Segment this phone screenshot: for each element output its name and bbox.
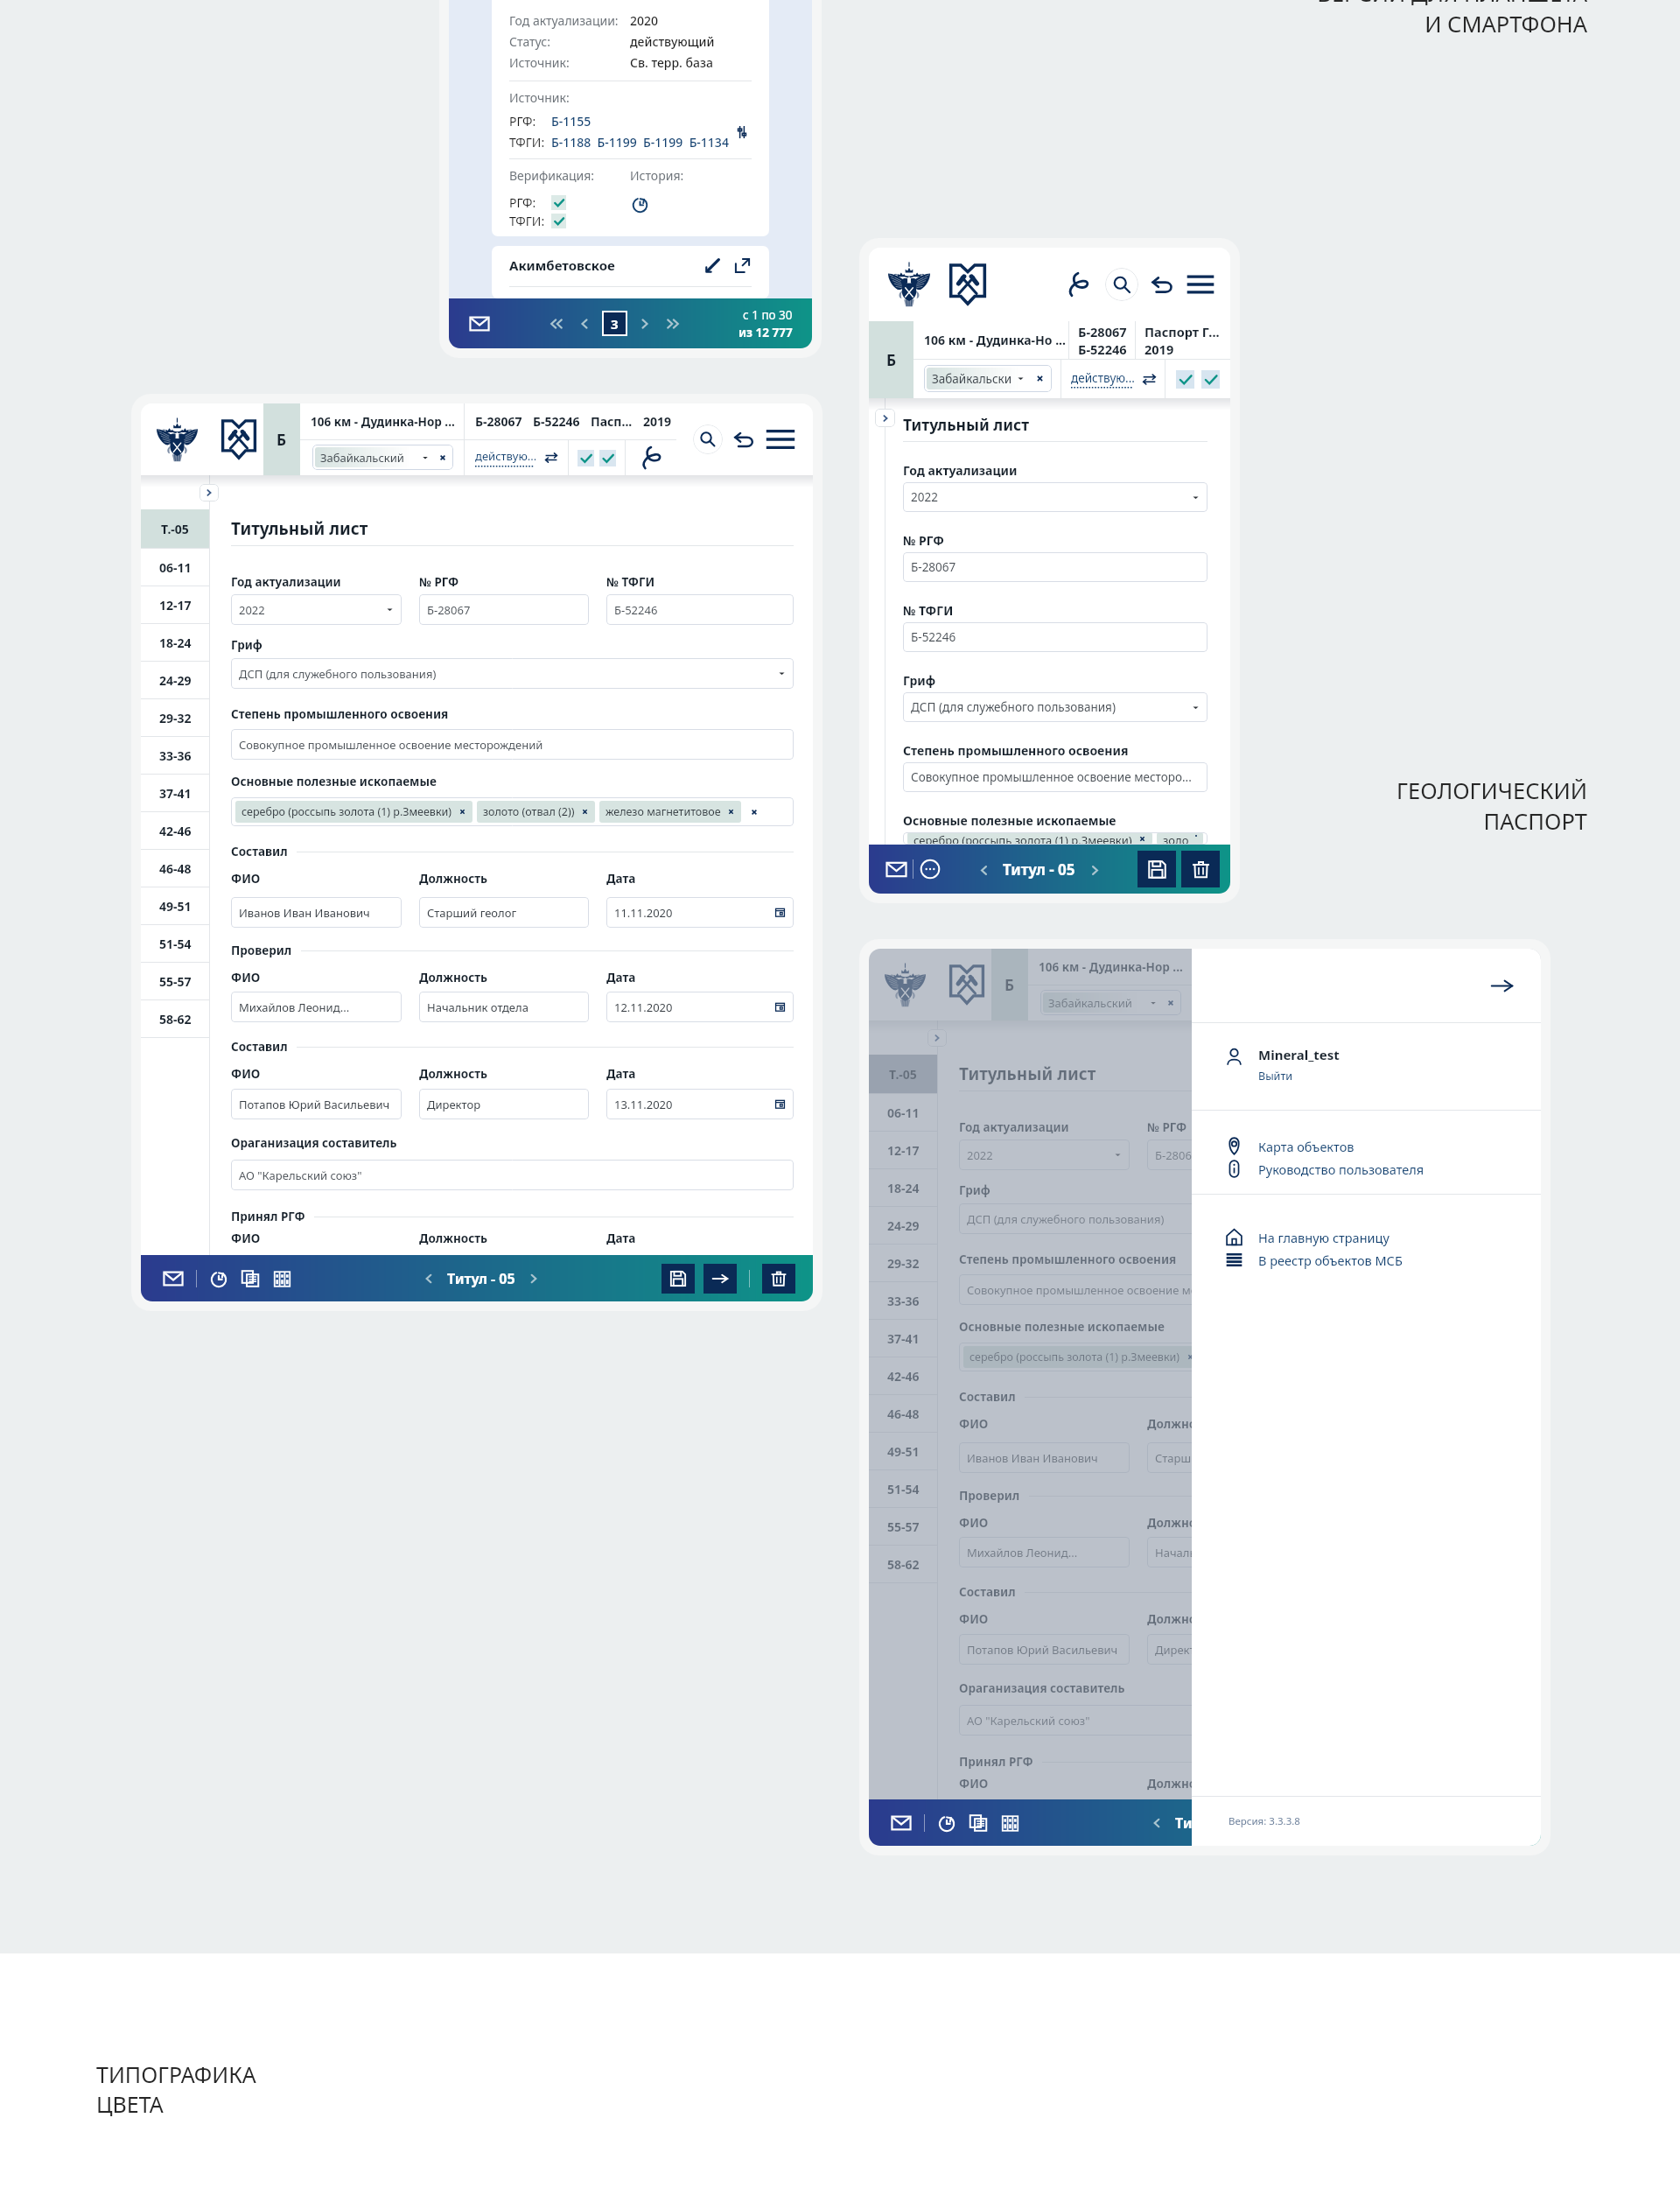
button[interactable]: Filter — [732, 123, 752, 142]
button[interactable]: Б-52246 — [903, 622, 1207, 652]
button[interactable]: 42-46 — [141, 812, 209, 849]
button[interactable]: 55-57 — [141, 963, 209, 999]
button[interactable]: Previous page — [574, 313, 595, 334]
button[interactable]: Edit — [703, 256, 722, 275]
button[interactable]: Руководство пользователя — [1192, 1160, 1541, 1178]
button[interactable]: Старший геолог — [419, 897, 589, 928]
button[interactable]: Mail — [468, 312, 491, 335]
button[interactable]: 3 — [602, 311, 627, 336]
button[interactable]: Забайкальский — [1040, 990, 1181, 1015]
button[interactable]: Copy — [240, 1268, 261, 1289]
button[interactable]: 06-11 — [141, 549, 209, 586]
button[interactable]: 12.11.2020 — [606, 992, 794, 1022]
button[interactable]: 37-41 — [141, 775, 209, 811]
button[interactable]: 18-24 — [869, 1169, 937, 1206]
button[interactable]: Mineral_test — [1192, 1046, 1541, 1083]
button[interactable]: 06-11 — [869, 1094, 937, 1131]
button[interactable]: 33-36 — [141, 737, 209, 774]
button[interactable]: Previous — [974, 860, 993, 880]
button[interactable]: Table — [999, 1813, 1020, 1834]
button[interactable]: 46-48 — [869, 1395, 937, 1432]
button[interactable]: 18-24 — [141, 624, 209, 661]
button[interactable]: Delete — [1181, 851, 1220, 887]
button[interactable]: Next page — [634, 313, 655, 334]
button[interactable]: Open — [732, 256, 752, 275]
button[interactable]: History — [630, 194, 650, 214]
button[interactable]: 2022 — [959, 1140, 1130, 1170]
button[interactable]: 51-54 — [869, 1470, 937, 1507]
button[interactable]: Начальник отдела — [1147, 1537, 1317, 1567]
button[interactable]: 11.11.2020 — [606, 897, 794, 928]
button[interactable]: ДСП (для служебного пользования) — [959, 1203, 1522, 1234]
button[interactable]: 58-62 — [141, 1000, 209, 1037]
button[interactable]: Verified TFGI — [1201, 370, 1220, 389]
button[interactable]: 37-41 — [869, 1320, 937, 1357]
button[interactable]: Т.-05 — [141, 509, 209, 548]
button[interactable]: 42-46 — [869, 1357, 937, 1394]
button[interactable]: 12-17 — [141, 586, 209, 623]
button[interactable]: Close menu — [1487, 971, 1516, 1000]
button[interactable]: Copy — [968, 1813, 989, 1834]
button[interactable]: Потапов Юрий Васильевич — [959, 1634, 1130, 1665]
button[interactable]: Потапов Юрий Васильевич — [231, 1089, 402, 1119]
button[interactable]: Иванов Иван Иванович — [231, 897, 402, 928]
button[interactable]: Forward — [703, 1264, 737, 1294]
button[interactable]: Директор — [419, 1089, 589, 1119]
button[interactable]: Mail — [162, 1267, 185, 1290]
button[interactable]: 49-51 — [141, 887, 209, 924]
button[interactable]: Б-52246 — [1334, 1140, 1522, 1170]
button[interactable]: Mail — [885, 858, 907, 880]
button[interactable]: Б — [991, 949, 1028, 1020]
button[interactable]: В реестр объектов МСБ — [1192, 1251, 1541, 1269]
button[interactable]: Забайкальский — [924, 365, 1052, 392]
button[interactable]: 12-17 — [869, 1132, 937, 1168]
button[interactable]: Б — [263, 403, 300, 475]
button[interactable]: Menu — [1186, 270, 1215, 299]
button[interactable]: Б-28067 — [1147, 1140, 1317, 1170]
button[interactable]: 55-57 — [869, 1508, 937, 1545]
button[interactable]: 2022 — [903, 482, 1207, 512]
button[interactable]: Search — [693, 424, 723, 454]
button[interactable]: Expand panel — [927, 1029, 947, 1047]
button[interactable]: History — [936, 1813, 957, 1834]
button[interactable]: Михайлов Леонид... — [959, 1537, 1130, 1567]
button[interactable]: Verified RGF — [577, 450, 594, 466]
button[interactable]: серебро (россыпь золота (1) р.Змеевки) — [903, 832, 1207, 845]
button[interactable]: Search — [1105, 268, 1138, 301]
button[interactable]: Совокупное промышленное освоение месторо… — [231, 729, 794, 760]
button[interactable]: Иванов Иван Иванович — [959, 1442, 1130, 1473]
button[interactable]: АО "Карельский союз" — [959, 1705, 1522, 1736]
button[interactable]: 2022 — [231, 594, 402, 625]
button[interactable]: Sign document — [626, 440, 676, 475]
button[interactable]: 29-32 — [141, 699, 209, 736]
button[interactable]: Previous — [419, 1269, 438, 1288]
button[interactable]: ДСП (для служебного пользования) — [231, 658, 794, 689]
button[interactable]: Save — [1137, 851, 1176, 887]
button[interactable]: Next — [524, 1269, 543, 1288]
button[interactable]: Menu — [765, 424, 796, 455]
button[interactable]: Undo — [1149, 271, 1175, 298]
button[interactable]: Совокупное промышленное освоение месторо… — [903, 762, 1207, 792]
button[interactable]: Б-52246 — [606, 594, 794, 625]
button[interactable]: 58-62 — [869, 1546, 937, 1582]
button[interactable]: Delete — [762, 1264, 795, 1294]
button[interactable]: Expand panel — [199, 484, 219, 501]
button[interactable]: серебро (россыпь золота (1) р.Змеевки) — [959, 1343, 1522, 1371]
button[interactable]: На главную страницу — [1192, 1228, 1541, 1246]
button[interactable]: 29-32 — [869, 1245, 937, 1281]
button[interactable]: Menu — [1493, 969, 1524, 1000]
button[interactable]: Mail — [890, 1812, 913, 1834]
button[interactable]: Save — [661, 1264, 695, 1294]
button[interactable]: Sign — [1063, 270, 1093, 299]
button[interactable]: Table — [271, 1268, 292, 1289]
button[interactable]: Михайлов Леонид... — [231, 992, 402, 1022]
